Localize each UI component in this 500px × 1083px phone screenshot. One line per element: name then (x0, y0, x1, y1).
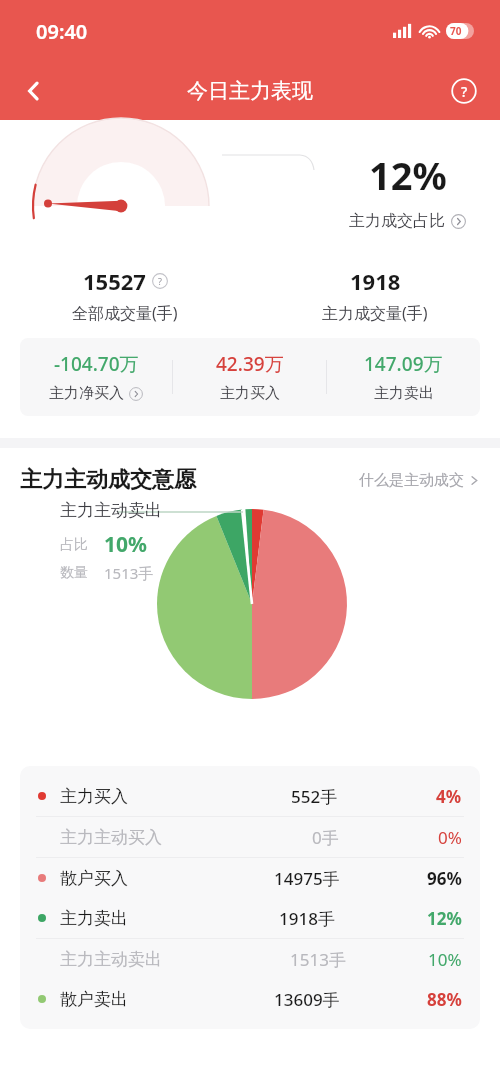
staticText: 散户买入 (60, 868, 128, 889)
staticText: 42.39万 (216, 351, 284, 377)
staticText: 什么是主动成交 (359, 471, 464, 490)
staticText: 12% (427, 907, 462, 930)
staticText: 15527 (83, 266, 146, 296)
staticText: 主力成交占比 (349, 211, 445, 231)
staticText: 主力卖出 (374, 384, 434, 403)
staticText: 4% (436, 785, 462, 808)
button[interactable]: 主力主动买入 (20, 817, 480, 857)
staticText: 全部成交量(手) (72, 302, 178, 324)
button[interactable]: 什么是主动成交 (359, 471, 480, 490)
staticText: 主力主动卖出 (60, 949, 162, 970)
staticText: 0手 (312, 826, 339, 849)
staticText: 1918手 (279, 907, 335, 930)
staticText: 今日主力表现 (187, 78, 313, 104)
staticText: 1513手 (290, 948, 346, 971)
button[interactable]: Back (10, 67, 58, 115)
button[interactable]: 147.09万 (327, 338, 480, 416)
staticText: 主力主动成交意愿 (20, 466, 196, 494)
staticText: 主力买入 (60, 786, 128, 807)
staticText: 主力净买入 (49, 384, 124, 403)
staticText: 1918 (350, 266, 401, 296)
staticText: ? (461, 82, 468, 101)
staticText: 88% (427, 988, 462, 1011)
staticText: 1513手 (104, 563, 154, 583)
staticText: 主力主动卖出 (60, 500, 162, 521)
staticText: -104.70万 (54, 351, 139, 377)
staticText: 10% (428, 948, 462, 971)
staticText: 主力买入 (220, 384, 280, 403)
button[interactable]: Help (442, 69, 486, 113)
button[interactable]: 主力成交占比 (349, 211, 466, 231)
staticText: 147.09万 (364, 351, 443, 377)
staticText: 占比 (60, 536, 88, 554)
staticText: 主力卖出 (60, 908, 128, 929)
button[interactable]: 散户买入 (20, 858, 480, 898)
staticText: 09:40 (36, 18, 88, 45)
staticText: 0% (438, 826, 462, 849)
staticText: 552手 (291, 785, 338, 808)
staticText: ? (158, 275, 162, 287)
button[interactable]: 主力买入 (20, 776, 480, 816)
staticText: 散户卖出 (60, 989, 128, 1010)
staticText: 主力主动买入 (60, 827, 162, 848)
staticText: 96% (427, 867, 462, 890)
staticText: 14975手 (274, 867, 340, 890)
button[interactable]: 42.39万 (173, 338, 326, 416)
button[interactable]: 主力卖出 (20, 898, 480, 938)
button[interactable]: 散户卖出 (20, 979, 480, 1019)
staticText: 70 (450, 24, 462, 38)
staticText: 数量 (60, 564, 88, 582)
button[interactable]: Info (152, 273, 168, 289)
staticText: 10% (104, 530, 147, 559)
staticText: 13609手 (274, 988, 340, 1011)
staticText: 主力成交量(手) (322, 302, 428, 324)
button[interactable]: 主力主动卖出 (20, 939, 480, 979)
staticText: 12% (369, 149, 447, 201)
button[interactable]: -104.70万 (20, 338, 172, 416)
